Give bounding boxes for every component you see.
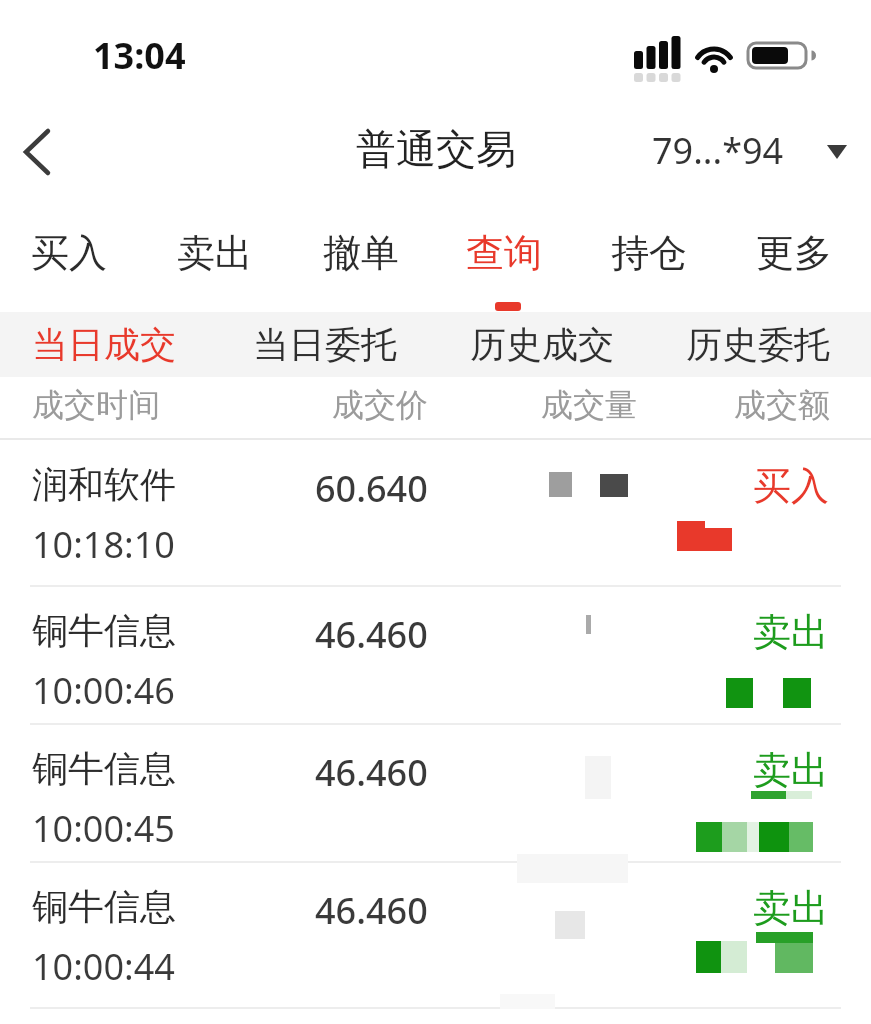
staticText: 成交价 (332, 385, 428, 425)
staticText: 卖出 (753, 884, 829, 932)
button[interactable]: 持仓 (594, 213, 704, 293)
button[interactable]: 买入 (14, 213, 124, 293)
staticText: 查询 (466, 229, 542, 277)
staticText: 历史成交 (470, 322, 614, 367)
button[interactable]: 撤单 (306, 213, 416, 293)
staticText: 铜牛信息 (32, 746, 176, 791)
button[interactable]: 查询 (449, 213, 559, 293)
staticText: 10:18:10 (32, 520, 175, 569)
button[interactable]: 铜牛信息 (0, 862, 871, 1008)
button[interactable]: 历史成交 (470, 312, 614, 377)
button[interactable]: 润和软件 (0, 440, 871, 586)
button[interactable]: 79...*94 (640, 118, 860, 182)
staticText: 买入 (753, 462, 829, 510)
staticText: 卖出 (753, 746, 829, 794)
staticText: 历史委托 (686, 322, 830, 367)
staticText: 成交量 (541, 385, 637, 425)
staticText: 持仓 (611, 229, 687, 277)
staticText: 46.460 (315, 610, 428, 659)
button[interactable]: 当日委托 (253, 312, 397, 377)
staticText: 卖出 (753, 608, 829, 656)
button[interactable] (8, 115, 68, 187)
staticText: 10:00:46 (32, 666, 175, 715)
staticText: 13:04 (93, 31, 186, 80)
staticText: 卖出 (177, 229, 253, 277)
button[interactable]: 更多 (739, 213, 849, 293)
staticText: 79...*94 (652, 126, 784, 175)
staticText: 更多 (756, 229, 832, 277)
button[interactable]: 历史委托 (686, 312, 830, 377)
button[interactable]: 铜牛信息 (0, 586, 871, 724)
staticText: 当日成交 (32, 322, 176, 367)
staticText: 成交额 (734, 385, 830, 425)
button[interactable]: 当日成交 (32, 312, 176, 377)
staticText: 买入 (31, 229, 107, 277)
staticText: 铜牛信息 (32, 608, 176, 653)
staticText: 46.460 (315, 748, 428, 797)
staticText: 铜牛信息 (32, 884, 176, 929)
staticText: 当日委托 (253, 322, 397, 367)
staticText: 60.640 (315, 464, 428, 513)
button[interactable]: 铜牛信息 (0, 724, 871, 862)
staticText: 普通交易 (356, 124, 516, 174)
staticText: 10:00:44 (32, 942, 175, 991)
button[interactable]: 卖出 (160, 213, 270, 293)
staticText: 成交时间 (32, 385, 160, 425)
staticText: 润和软件 (32, 462, 176, 507)
staticText: 撤单 (323, 229, 399, 277)
staticText: 46.460 (315, 886, 428, 935)
staticText: 10:00:45 (32, 804, 175, 853)
